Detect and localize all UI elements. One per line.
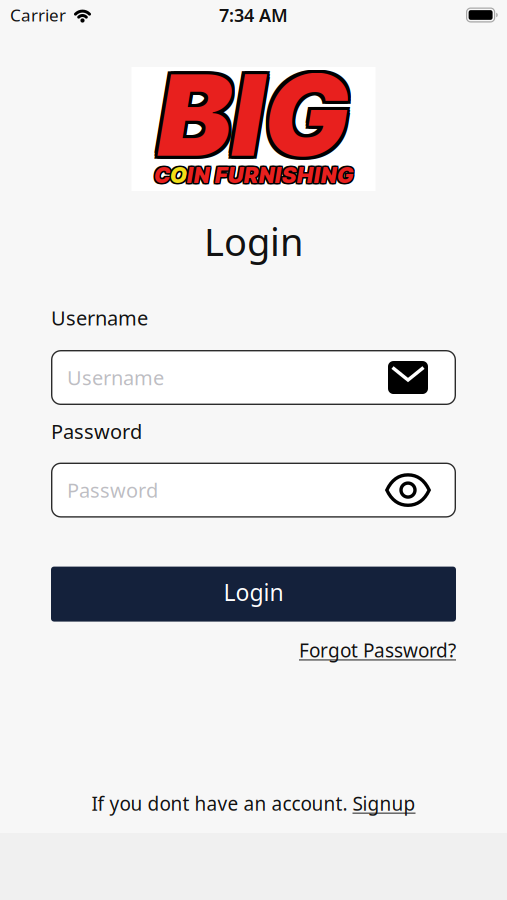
staticText: IN FURNISHING (186, 163, 352, 190)
button[interactable]: Login (51, 567, 456, 622)
staticText: O (170, 162, 187, 188)
staticText: IN FURNISHING (187, 163, 353, 190)
staticText: O (171, 163, 188, 190)
staticText: BIG (161, 50, 351, 186)
staticText: If you dont have an account. Signup (91, 791, 415, 816)
staticText: O (170, 163, 187, 190)
staticText: C (153, 163, 169, 190)
staticText: C (154, 160, 170, 187)
staticText: IN FURNISHING (187, 162, 353, 188)
staticText: C (154, 163, 170, 190)
staticText: Forgot Password? (299, 638, 456, 663)
staticText: IN FURNISHING (186, 160, 352, 187)
staticText: BIG (161, 44, 351, 180)
staticText: C (153, 162, 169, 188)
staticText: C (155, 163, 171, 190)
staticText: O (171, 160, 188, 187)
staticText: O (169, 163, 186, 190)
staticText: O (171, 162, 188, 188)
staticText: Password (51, 418, 142, 445)
staticText: O (169, 162, 186, 188)
staticText: O (169, 160, 186, 187)
staticText: Username (51, 304, 148, 331)
button[interactable]: If you dont have an account. Signup (91, 791, 415, 816)
staticText: BIG (155, 47, 345, 183)
staticText: BIG (158, 50, 348, 186)
staticText: IN FURNISHING (187, 160, 353, 187)
staticText: O (170, 160, 187, 187)
staticText: C (155, 160, 171, 187)
staticText: BIG (161, 47, 351, 183)
staticText: Username (67, 364, 164, 391)
staticText: BIG (155, 50, 345, 186)
staticText: Carrier (10, 4, 66, 26)
staticText: BIG (158, 47, 348, 183)
staticText: Password (67, 477, 158, 503)
staticText: BIG (158, 44, 348, 180)
staticText: BIG (155, 44, 345, 180)
staticText: IN FURNISHING (188, 163, 354, 190)
button[interactable]: Forgot Password? (299, 638, 456, 663)
staticText: 7:34 AM (219, 3, 288, 27)
staticText: C (154, 162, 170, 188)
button[interactable]: Show password (385, 473, 431, 507)
staticText: IN FURNISHING (188, 162, 354, 188)
staticText: IN FURNISHING (186, 162, 352, 188)
staticText: C (153, 160, 169, 187)
staticText: C (155, 162, 171, 188)
staticText: Login (223, 577, 283, 607)
staticText: IN FURNISHING (188, 160, 354, 187)
staticText: Login (204, 216, 303, 266)
